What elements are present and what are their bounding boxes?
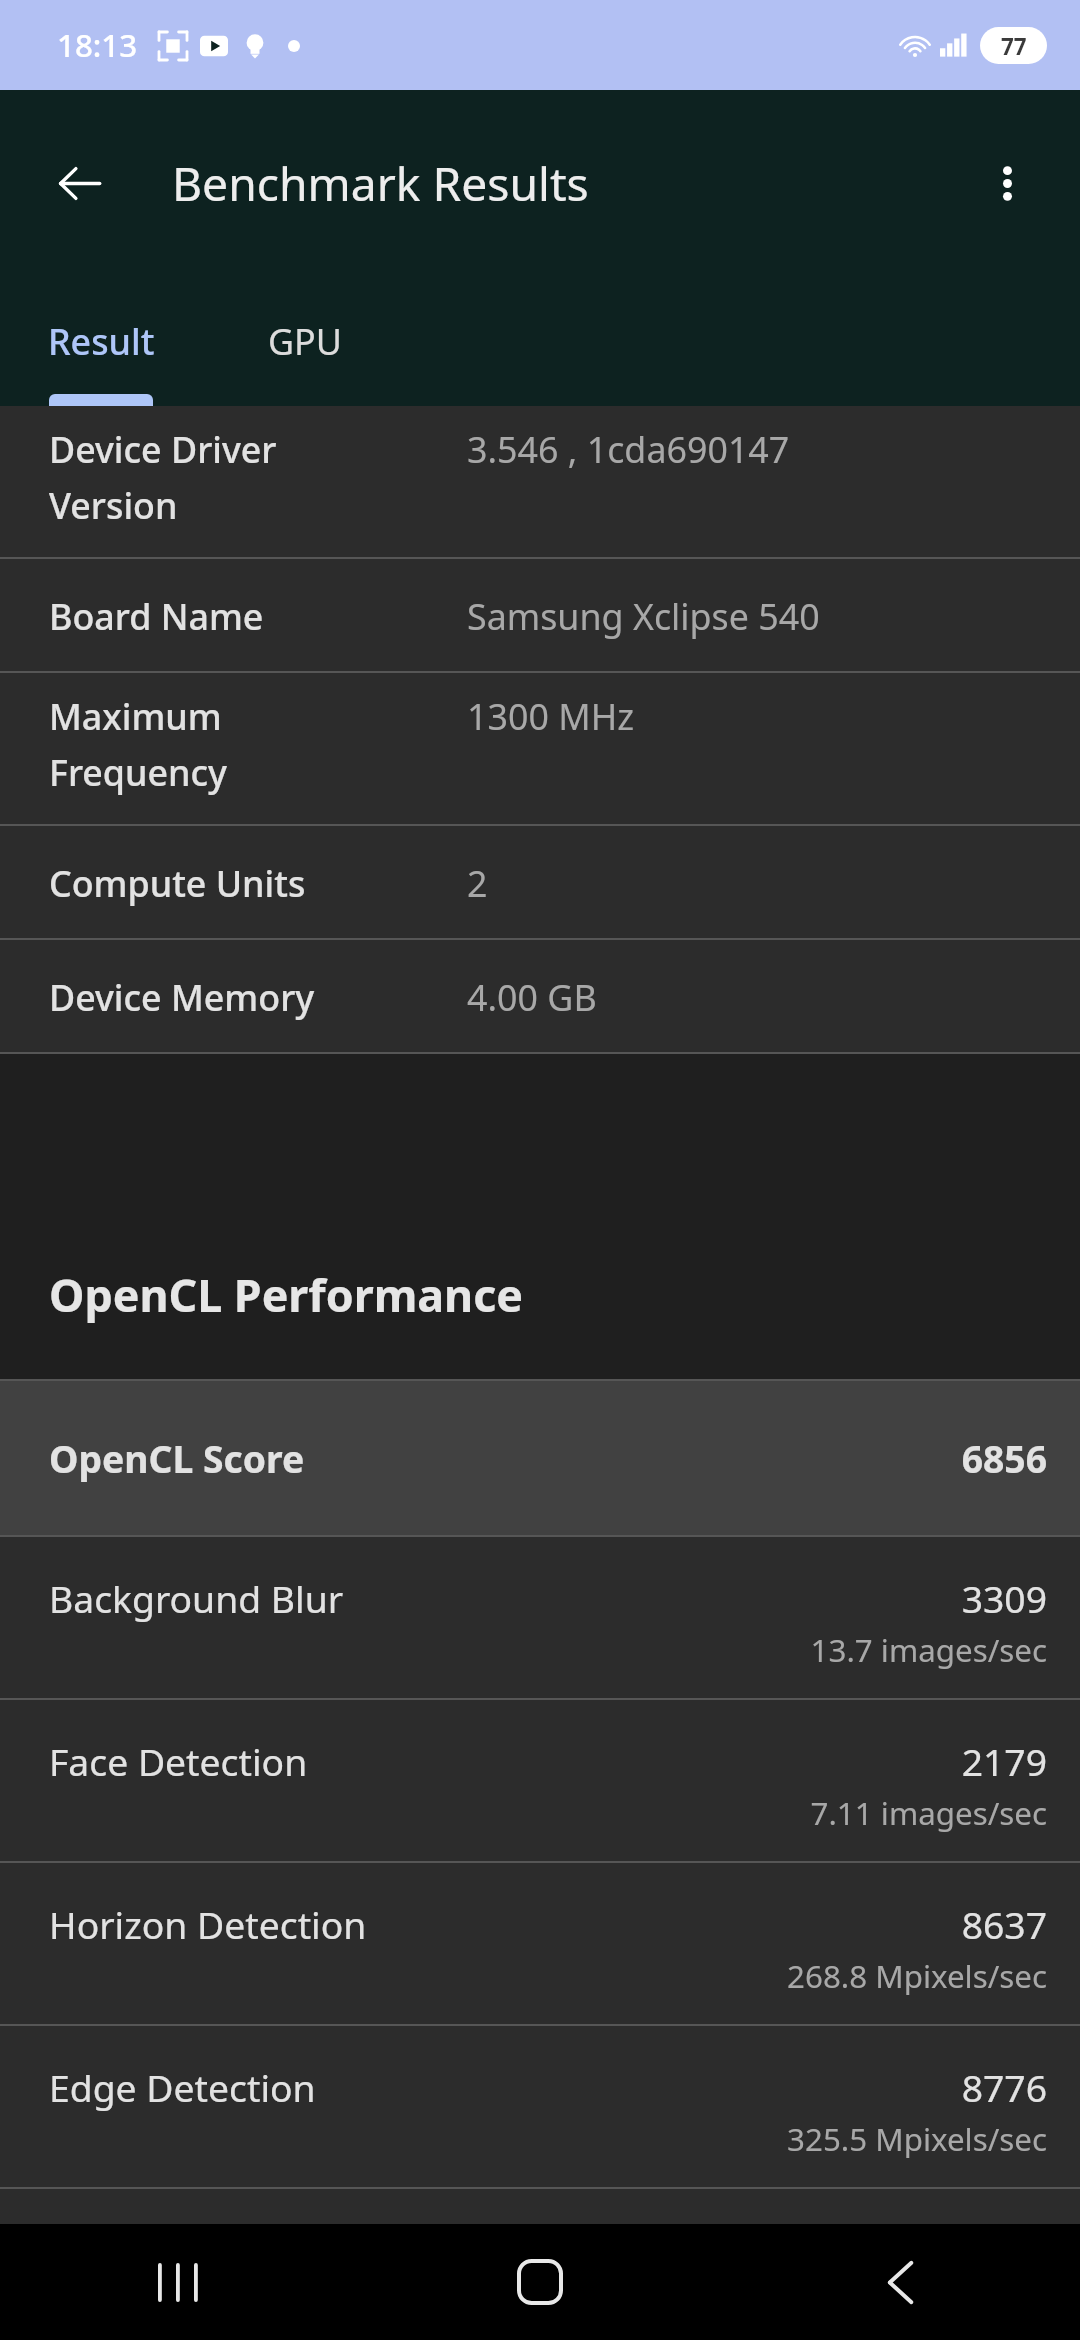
staticText: OpenCL Performance [49,1264,523,1325]
staticText: Maximum Frequency [49,692,227,797]
button[interactable]: Maximum Frequency [0,673,1080,824]
staticText: 268.8 Mpixels/sec [787,1955,1047,1998]
staticText: Samsung Xclipse 540 [467,592,820,641]
staticText: 4.00 GB [467,973,597,1022]
staticText: 325.5 Mpixels/sec [787,2118,1047,2161]
button[interactable]: More options [961,137,1053,229]
staticText: 77 [1001,31,1027,61]
staticText: 6856 [961,1433,1047,1484]
staticText: 13.7 images/sec [810,1629,1047,1672]
staticText: 18:13 [57,24,138,67]
button[interactable]: Home [360,2224,720,2340]
button[interactable]: Result [0,276,203,406]
staticText: Device Driver Version [49,425,277,530]
button[interactable]: Face Detection [0,1700,1080,1861]
button[interactable]: Edge Detection [0,2026,1080,2187]
staticText: Horizon Detection [49,1899,367,1950]
staticText: Board Name [49,592,264,641]
staticText: 1300 MHz [467,692,635,741]
button[interactable]: Back [720,2224,1080,2340]
button[interactable]: Back [33,137,125,229]
staticText: 2 [467,859,488,908]
button[interactable]: GPU [203,276,406,406]
staticText: Compute Units [49,859,306,908]
button[interactable]: Compute Units [0,826,1080,938]
staticText: GPU [268,317,342,366]
button[interactable]: Background Blur [0,1537,1080,1698]
staticText: 2179 [961,1736,1047,1787]
staticText: Benchmark Results [172,152,589,215]
staticText: 3.546 , 1cda690147 [467,425,790,474]
staticText: 8637 [961,1899,1047,1950]
staticText: 7.11 images/sec [810,1792,1047,1835]
button[interactable]: Device Memory [0,940,1080,1052]
staticText: Device Memory [49,973,315,1022]
staticText: Face Detection [49,1736,308,1787]
button[interactable]: Board Name [0,559,1080,671]
button[interactable]: Device Driver Version [0,406,1080,557]
staticText: Result [48,317,155,366]
staticText: 3309 [961,1573,1047,1624]
staticText: OpenCL Score [49,1433,305,1484]
staticText: Edge Detection [49,2062,316,2113]
staticText: 8776 [961,2062,1047,2113]
button[interactable]: Recent apps [0,2224,360,2340]
staticText: Background Blur [49,1573,344,1624]
button[interactable]: OpenCL Score [0,1381,1080,1535]
button[interactable]: Horizon Detection [0,1863,1080,2024]
